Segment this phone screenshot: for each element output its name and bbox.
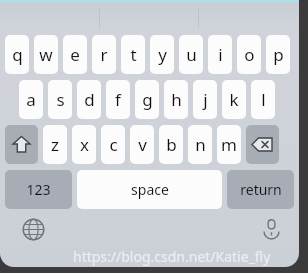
staticText: h <box>171 88 182 111</box>
staticText: j <box>203 88 208 111</box>
button[interactable]: return <box>227 170 294 209</box>
button[interactable]: Dictation <box>261 217 282 238</box>
staticText: o <box>244 43 255 66</box>
staticText: p <box>273 43 284 66</box>
button[interactable]: l <box>251 80 275 119</box>
staticText: y <box>158 43 167 66</box>
button[interactable]: p <box>266 35 290 74</box>
staticText: z <box>51 133 59 156</box>
staticText: s <box>56 88 65 111</box>
button[interactable]: w <box>34 35 58 74</box>
staticText: m <box>221 133 237 156</box>
button[interactable]: t <box>121 35 145 74</box>
staticText: https://blog.csdn.net/Katie_fly <box>73 247 271 266</box>
button[interactable]: b <box>159 125 183 164</box>
staticText: u <box>186 43 197 66</box>
button[interactable]: x <box>72 125 96 164</box>
button[interactable]: q <box>5 35 29 74</box>
staticText: return <box>240 180 282 199</box>
button[interactable]: Shift <box>5 125 38 164</box>
button[interactable]: h <box>164 80 188 119</box>
button[interactable]: Change keyboard <box>22 218 45 241</box>
button[interactable]: c <box>101 125 125 164</box>
button[interactable]: v <box>130 125 154 164</box>
staticText: c <box>109 133 118 156</box>
button[interactable]: space <box>77 170 222 209</box>
button[interactable]: i <box>208 35 232 74</box>
button[interactable]: s <box>48 80 72 119</box>
button[interactable]: e <box>63 35 87 74</box>
button[interactable]: r <box>92 35 116 74</box>
button[interactable]: Delete <box>246 125 279 164</box>
button[interactable]: o <box>237 35 261 74</box>
staticText: q <box>12 43 23 66</box>
staticText: a <box>26 88 36 111</box>
staticText: g <box>142 88 153 111</box>
staticText: k <box>229 88 239 111</box>
button[interactable]: z <box>43 125 67 164</box>
button[interactable]: d <box>77 80 101 119</box>
staticText: d <box>84 88 95 111</box>
button[interactable]: 123 <box>5 170 72 209</box>
staticText: w <box>39 43 53 66</box>
button[interactable]: g <box>135 80 159 119</box>
button[interactable]: k <box>222 80 246 119</box>
button[interactable]: m <box>217 125 241 164</box>
staticText: v <box>138 133 147 156</box>
staticText: i <box>218 43 223 66</box>
staticText: t <box>130 43 137 66</box>
button[interactable]: y <box>150 35 174 74</box>
button[interactable]: f <box>106 80 130 119</box>
staticText: f <box>115 88 121 111</box>
staticText: space <box>131 180 169 199</box>
staticText: b <box>166 133 177 156</box>
staticText: l <box>261 88 266 111</box>
staticText: e <box>70 43 80 66</box>
button[interactable]: a <box>19 80 43 119</box>
button[interactable]: j <box>193 80 217 119</box>
staticText: 123 <box>26 180 51 199</box>
button[interactable]: n <box>188 125 212 164</box>
staticText: r <box>100 43 108 66</box>
staticText: x <box>80 133 89 156</box>
button[interactable]: u <box>179 35 203 74</box>
staticText: n <box>195 133 206 156</box>
